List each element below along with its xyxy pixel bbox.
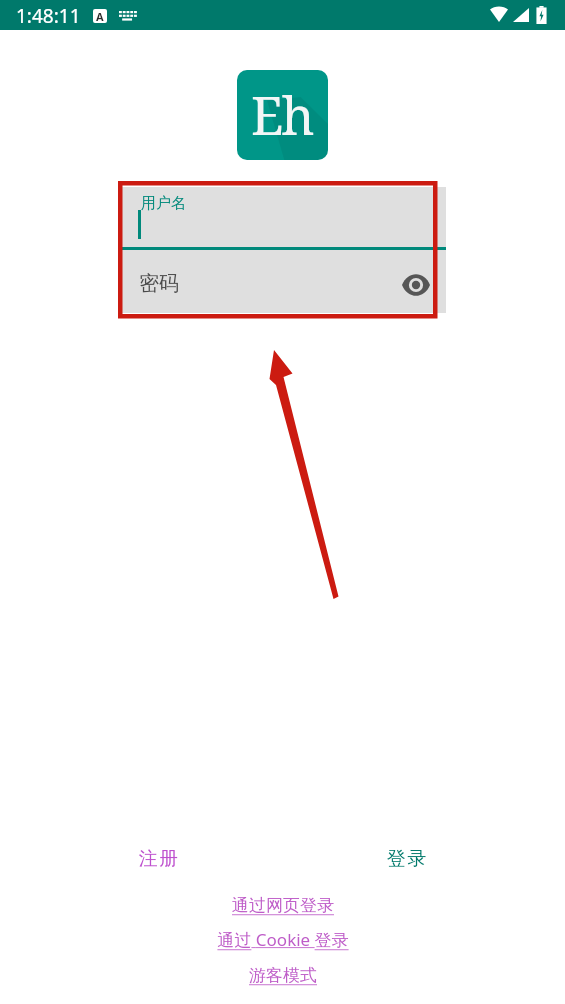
staticText: 通过网页登录 — [232, 895, 334, 916]
button[interactable]: 游客模式 — [239, 963, 327, 988]
staticText: A — [96, 9, 104, 23]
staticText: 登录 — [386, 847, 427, 871]
staticText: 用户名 — [141, 194, 186, 213]
button[interactable]: 登录 — [370, 837, 442, 881]
other: Mobile signal — [513, 8, 529, 22]
staticText: 注册 — [138, 847, 179, 871]
button[interactable]: 密码 — [120, 250, 446, 313]
other: Wi-Fi — [490, 7, 508, 22]
staticText: 通过 Cookie 登录 — [217, 928, 349, 951]
staticText: Eh — [251, 79, 313, 150]
other: Keyboard active — [119, 11, 135, 21]
button[interactable]: 通过 Cookie 登录 — [207, 926, 359, 953]
button[interactable]: 用户名 — [120, 187, 446, 250]
other: Battery charging — [535, 6, 548, 24]
staticText: 1:48:11 — [16, 3, 81, 29]
button[interactable]: 通过网页登录 — [222, 893, 344, 918]
button[interactable]: Show password — [396, 265, 436, 305]
button[interactable]: 注册 — [122, 837, 194, 881]
staticText: 密码 — [139, 271, 179, 296]
staticText: 游客模式 — [249, 965, 317, 986]
